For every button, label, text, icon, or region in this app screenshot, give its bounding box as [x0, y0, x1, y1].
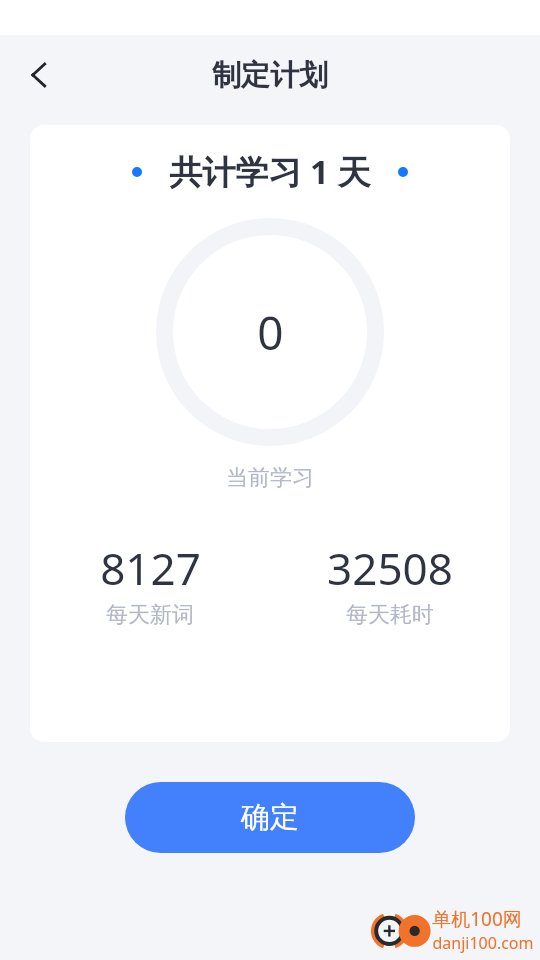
staticText: 确定 — [241, 799, 299, 836]
staticText: 8127 — [100, 538, 201, 598]
staticText: 每天耗时 — [346, 601, 434, 629]
button[interactable]: Back — [10, 46, 68, 104]
staticText: 每天新词 — [106, 601, 194, 629]
staticText: 32508 — [327, 538, 453, 598]
button[interactable]: 32508 — [270, 538, 510, 629]
staticText: 制定计划 — [212, 57, 328, 94]
staticText: 共计学习 1 天 — [169, 149, 371, 194]
staticText: 当前学习 — [226, 464, 314, 492]
staticText: 单机100网 — [432, 906, 522, 932]
button[interactable]: 确定 — [125, 782, 415, 853]
staticText: 0 — [257, 301, 284, 364]
staticText: danji100.com — [432, 932, 534, 954]
button[interactable]: 8127 — [30, 538, 270, 629]
